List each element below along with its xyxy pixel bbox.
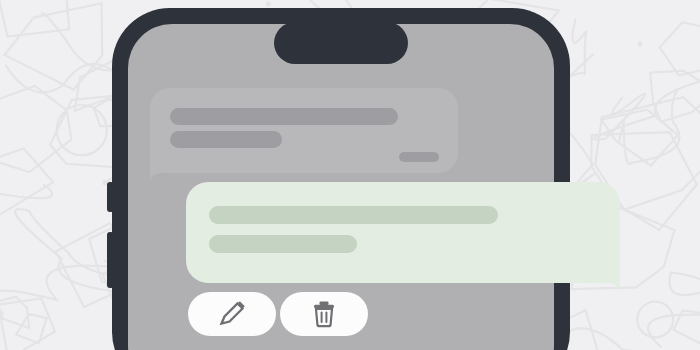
button[interactable]: Edit — [188, 292, 276, 336]
button[interactable]: Delete — [280, 292, 368, 336]
